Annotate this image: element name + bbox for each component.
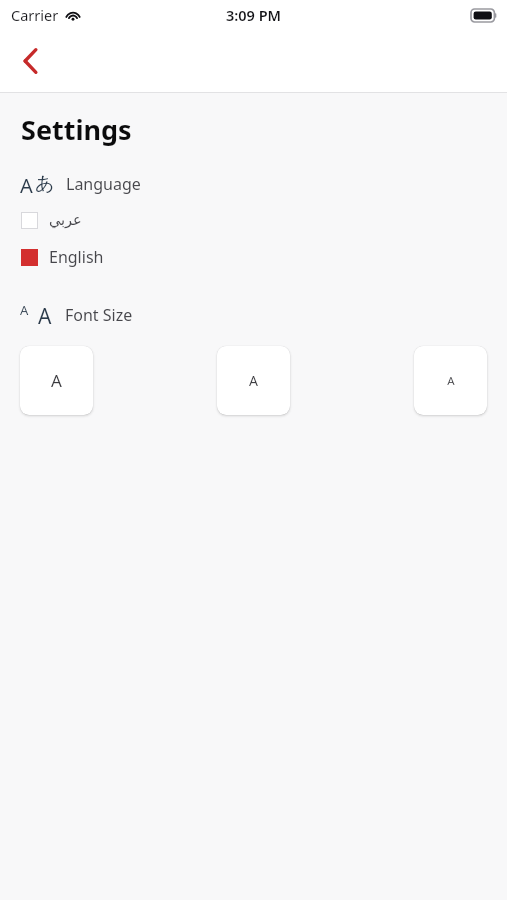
- staticText: 3:09 PM: [226, 5, 282, 25]
- staticText: Carrier: [11, 5, 59, 25]
- button[interactable]: A: [217, 346, 290, 415]
- button[interactable]: A: [20, 346, 93, 415]
- staticText: A: [38, 302, 52, 328]
- button[interactable]: A: [414, 346, 487, 415]
- staticText: A: [447, 373, 455, 389]
- button[interactable]: Back: [6, 37, 54, 85]
- staticText: English: [49, 246, 104, 268]
- button[interactable]: A: [0, 300, 507, 330]
- staticText: Settings: [21, 111, 132, 148]
- staticText: A: [20, 172, 33, 196]
- staticText: Language: [66, 173, 141, 195]
- button[interactable]: عربي: [0, 210, 507, 231]
- staticText: Font Size: [65, 304, 133, 326]
- staticText: A: [51, 369, 62, 392]
- staticText: あ: [35, 172, 55, 196]
- staticText: A: [249, 371, 258, 390]
- button[interactable]: A: [0, 170, 507, 198]
- staticText: A: [20, 301, 29, 319]
- button[interactable]: English: [0, 244, 507, 270]
- staticText: عربي: [49, 212, 82, 229]
